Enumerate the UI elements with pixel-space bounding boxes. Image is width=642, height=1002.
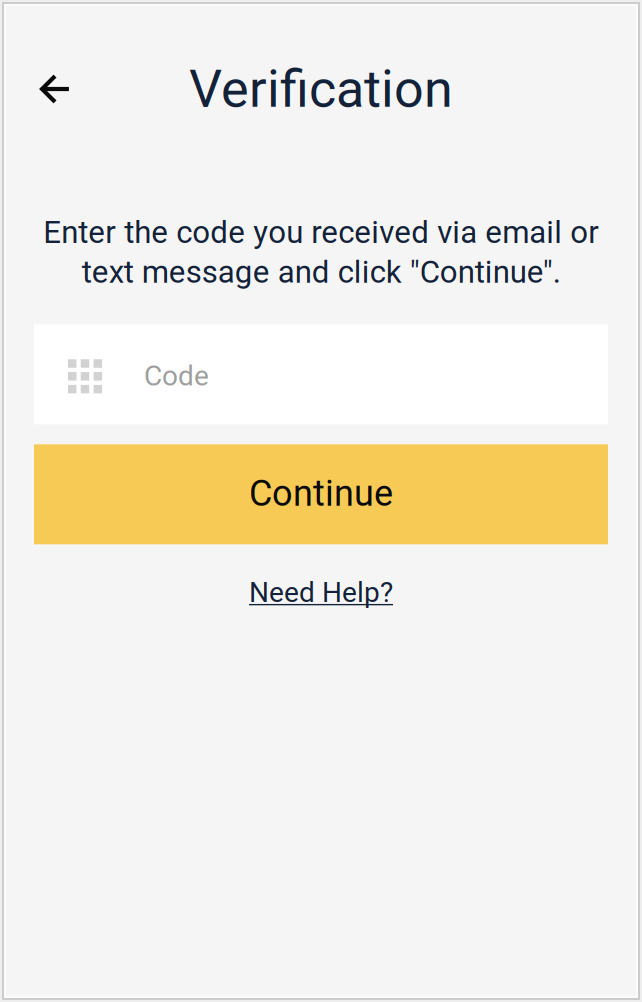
button[interactable]: Back bbox=[21, 55, 89, 123]
staticText: Need Help? bbox=[249, 576, 393, 609]
button[interactable]: Need Help? bbox=[221, 572, 421, 612]
staticText: Code bbox=[144, 359, 209, 392]
staticText: Continue bbox=[249, 472, 393, 514]
staticText: Enter the code you received via email or… bbox=[43, 214, 599, 290]
staticText: Verification bbox=[189, 58, 453, 119]
button[interactable]: Continue bbox=[34, 444, 608, 544]
button[interactable]: Code bbox=[34, 324, 608, 424]
